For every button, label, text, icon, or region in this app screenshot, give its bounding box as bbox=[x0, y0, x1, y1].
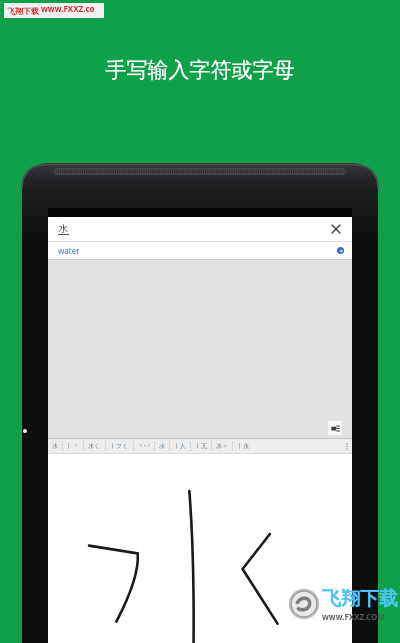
staticText: 手写输入字符或字母 bbox=[0, 57, 400, 83]
staticText: 水く bbox=[88, 442, 101, 450]
button[interactable]: 丿丶 bbox=[63, 442, 83, 450]
button[interactable]: Clear bbox=[328, 221, 344, 237]
button[interactable]: 丨永 bbox=[233, 442, 253, 450]
staticText: water bbox=[58, 245, 80, 256]
staticText: www.FXXZ.com bbox=[41, 3, 101, 18]
staticText: 飞翔下载 bbox=[7, 6, 39, 16]
button[interactable]: Handwriting input area bbox=[48, 454, 352, 643]
staticText: 飞翔下载 bbox=[322, 587, 398, 611]
staticText: 氺 bbox=[159, 442, 165, 450]
button[interactable]: 丨人 bbox=[170, 442, 190, 450]
staticText: www.FXXZ.COM bbox=[322, 611, 385, 621]
button[interactable]: water bbox=[48, 242, 352, 259]
button[interactable]: 丨フく bbox=[106, 442, 133, 450]
button[interactable]: Input method switch bbox=[328, 421, 342, 435]
staticText: 丨永 bbox=[237, 442, 249, 450]
staticText: 丨人 bbox=[174, 442, 186, 450]
button[interactable]: 水く bbox=[84, 442, 105, 450]
button[interactable]: 丨兀 bbox=[191, 442, 211, 450]
staticText: 丿丶 bbox=[67, 442, 79, 450]
staticText: 丨フく bbox=[110, 442, 129, 450]
button[interactable]: 冰＜ bbox=[212, 442, 232, 450]
staticText: 冰＜ bbox=[216, 442, 228, 450]
staticText: 水 bbox=[58, 222, 68, 235]
staticText: 水 bbox=[52, 442, 58, 450]
button[interactable]: More candidates bbox=[342, 439, 352, 453]
button[interactable]: 水 bbox=[48, 217, 352, 241]
staticText: 丶丷 bbox=[138, 442, 150, 450]
other: Insert suggestion bbox=[337, 247, 344, 254]
staticText: 丨兀 bbox=[195, 442, 207, 450]
button[interactable]: 水 bbox=[48, 442, 62, 450]
button[interactable]: 丶丷 bbox=[134, 442, 154, 450]
button[interactable]: 氺 bbox=[155, 442, 169, 450]
